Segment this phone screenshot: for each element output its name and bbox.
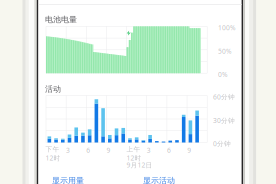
staticText: 6	[167, 146, 171, 155]
staticText: 3	[147, 146, 151, 155]
staticText: 30分钟	[213, 116, 235, 125]
staticText: 50%	[218, 47, 232, 56]
staticText: 显示用量	[52, 176, 84, 184]
staticText: 3	[66, 146, 70, 155]
staticText: 下午	[46, 145, 60, 153]
button[interactable]: 显示用量	[52, 177, 98, 184]
staticText: 9	[187, 146, 191, 155]
staticText: 9月12日	[126, 161, 152, 169]
staticText: 60分钟	[213, 92, 235, 101]
staticText: 0%	[218, 70, 228, 79]
staticText: 电池电量	[45, 15, 77, 24]
staticText: 0分钟	[213, 139, 231, 148]
staticText: 活动	[45, 84, 61, 94]
staticText: 6	[86, 146, 90, 155]
staticText: 100%	[218, 23, 236, 32]
staticText: 上午	[126, 145, 140, 153]
staticText: 12时	[46, 153, 61, 162]
button[interactable]: 显示活动	[143, 177, 189, 184]
staticText: 12时	[126, 153, 141, 162]
staticText: 显示活动	[143, 176, 175, 184]
staticText: 9	[106, 146, 110, 155]
